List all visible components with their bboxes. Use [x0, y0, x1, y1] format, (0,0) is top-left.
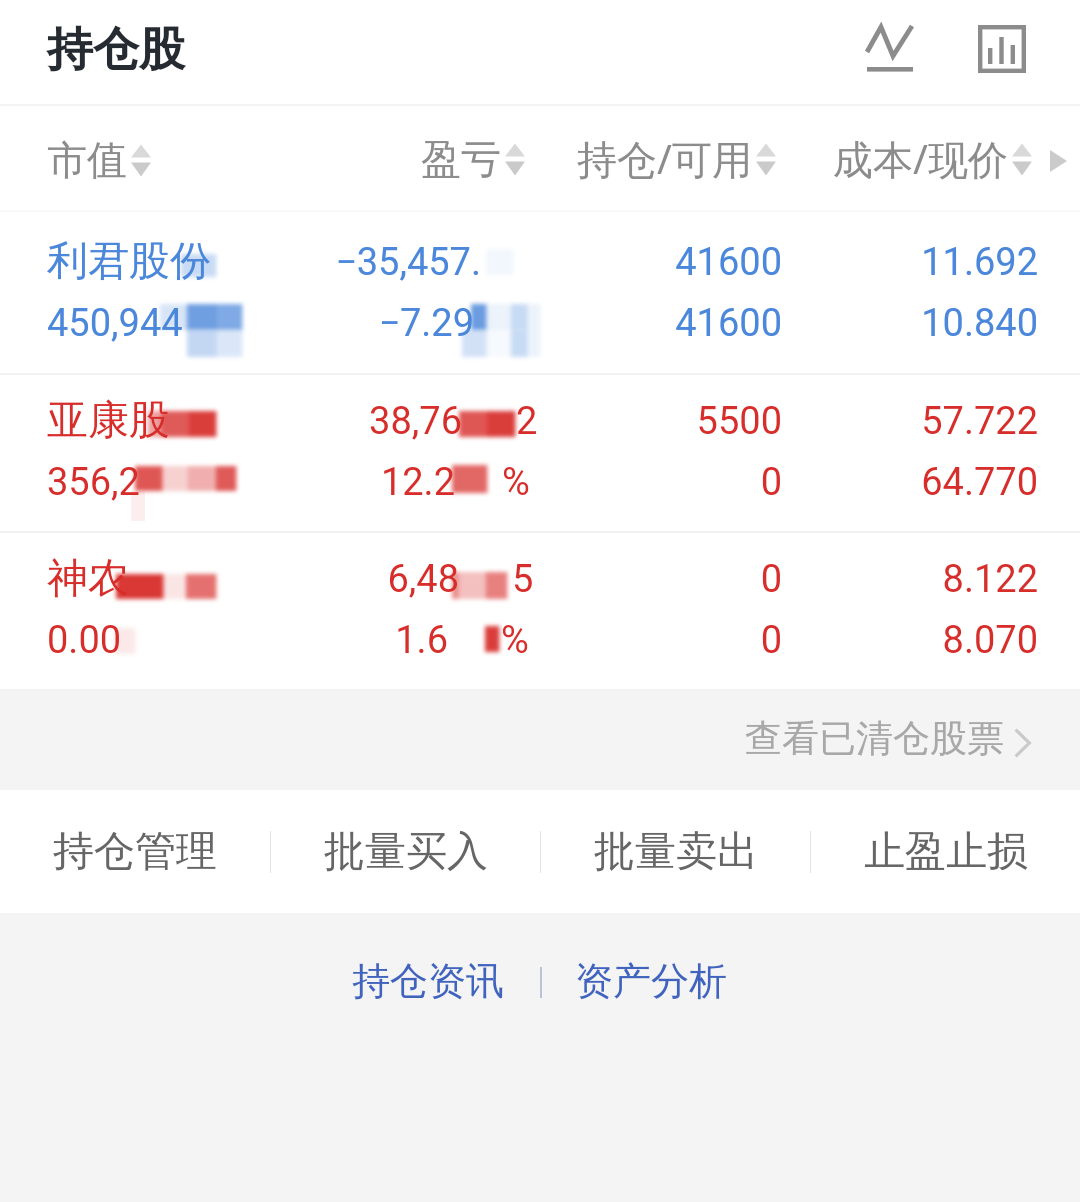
button[interactable]: 查看已清仓股票: [737, 701, 1040, 776]
staticText: 持仓管理: [53, 826, 217, 878]
button[interactable]: 神农: [0, 533, 1080, 691]
button[interactable]: 成本/现价: [833, 131, 1036, 186]
button[interactable]: 持仓资讯: [332, 937, 524, 1025]
staticText: 12.2: [35, 455, 455, 511]
staticText: 持仓股: [47, 21, 185, 79]
staticText: 6,48: [39, 552, 459, 608]
staticText: %: [502, 455, 530, 511]
button[interactable]: 资产分析: [555, 937, 747, 1025]
button[interactable]: 利君股份: [0, 212, 1080, 375]
staticText: %: [501, 613, 529, 669]
button[interactable]: 持仓管理: [0, 790, 270, 913]
staticText: 57.722: [618, 394, 1038, 450]
staticText: −35,457.: [61, 235, 481, 291]
staticText: 5: [512, 552, 534, 608]
button[interactable]: 止盈止损: [811, 790, 1080, 913]
button[interactable]: 亚康股: [0, 375, 1080, 533]
staticText: 0.00: [47, 613, 122, 669]
staticText: 批量买入: [324, 826, 488, 878]
staticText: 356,2: [47, 455, 140, 511]
staticText: 0: [362, 455, 782, 511]
staticText: 利君股份: [47, 236, 211, 288]
staticText: 持仓/可用: [577, 131, 752, 186]
staticText: 0: [362, 613, 782, 669]
staticText: 成本/现价: [833, 131, 1008, 186]
staticText: 资产分析: [575, 957, 727, 1005]
staticText: 1.6: [28, 613, 448, 669]
staticText: 持仓资讯: [352, 957, 504, 1005]
staticText: 盈亏: [421, 134, 501, 184]
staticText: 神农: [47, 553, 129, 605]
button[interactable]: 市值: [47, 135, 155, 185]
staticText: −7.29: [54, 296, 474, 352]
button[interactable]: 批量卖出: [541, 790, 810, 913]
staticText: 止盈止损: [864, 826, 1028, 878]
staticText: 8.070: [618, 613, 1038, 669]
staticText: 38,76: [42, 394, 462, 450]
staticText: 5500: [362, 394, 782, 450]
staticText: 10.840: [618, 296, 1038, 352]
staticText: 11.692: [618, 235, 1038, 291]
staticText: 批量卖出: [594, 826, 758, 878]
staticText: 41600: [362, 235, 782, 291]
button[interactable]: Bar chart: [954, 0, 1048, 94]
button[interactable]: 持仓/可用: [577, 131, 780, 186]
button[interactable]: 批量买入: [271, 790, 540, 913]
staticText: 查看已清仓股票: [745, 715, 1004, 762]
staticText: 41600: [362, 296, 782, 352]
staticText: 450,944: [47, 296, 183, 352]
staticText: 亚康股: [47, 395, 170, 447]
staticText: 市值: [47, 135, 127, 185]
button[interactable]: Line chart: [843, 0, 937, 94]
staticText: 64.770: [618, 455, 1038, 511]
staticText: 2: [516, 394, 538, 450]
staticText: 8.122: [618, 552, 1038, 608]
button[interactable]: 盈亏: [421, 134, 529, 184]
staticText: 0: [362, 552, 782, 608]
